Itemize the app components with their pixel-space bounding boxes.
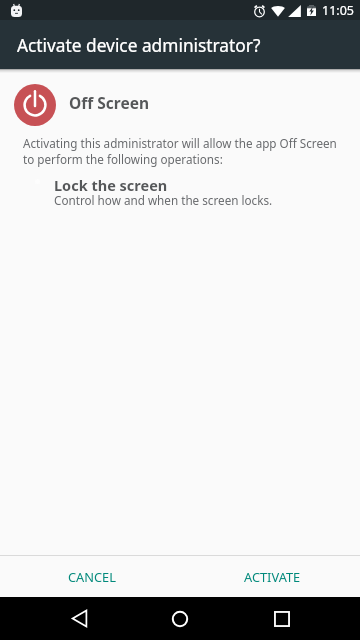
button[interactable]: CANCEL [56, 556, 128, 597]
staticText: Control how and when the screen locks. [54, 192, 273, 208]
staticText: 11:05 [322, 2, 354, 19]
staticText: CANCEL [68, 568, 116, 585]
staticText: Lock the screen [54, 175, 168, 195]
button[interactable]: Recent apps [249, 597, 314, 640]
staticText: Activate device administrator? [17, 34, 261, 58]
staticText: Off Screen [69, 92, 149, 113]
button[interactable]: ACTIVATE [232, 556, 313, 597]
button[interactable]: Home [147, 597, 212, 640]
staticText: ACTIVATE [244, 568, 301, 585]
button[interactable]: Back [47, 597, 112, 640]
staticText: Activating this administrator will allow… [23, 135, 338, 167]
